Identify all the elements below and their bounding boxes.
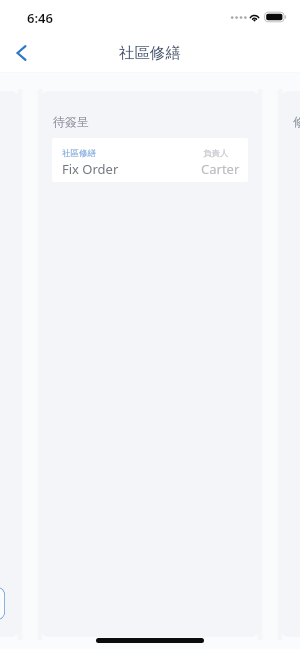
- staticText: 6:46: [27, 9, 53, 27]
- button[interactable]: Back: [2, 34, 40, 72]
- staticText: 負責人: [203, 148, 229, 159]
- staticText: Fix Order: [62, 160, 119, 178]
- staticText: 修繕中: [293, 114, 300, 129]
- button[interactable]: 社區修繕: [52, 138, 248, 182]
- staticText: Carter: [201, 160, 240, 178]
- staticText: 社區修繕: [119, 43, 181, 63]
- button[interactable]: Add item: [0, 587, 5, 620]
- staticText: 待簽呈: [53, 114, 89, 129]
- staticText: 社區修繕: [62, 148, 96, 159]
